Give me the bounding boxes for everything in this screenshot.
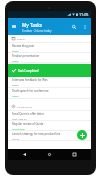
staticText: UPCOMING [17, 105, 32, 108]
button[interactable]: Send Quinn's offer letter [8, 111, 91, 121]
button[interactable]: Review blog post [8, 43, 91, 53]
button[interactable]: More options [80, 20, 89, 33]
button[interactable]: Search [69, 20, 79, 33]
staticText: My Tasks [22, 22, 43, 28]
staticText: Draft speech for conference [12, 89, 49, 93]
button[interactable]: Finalize presentation [8, 53, 91, 63]
staticText: Today [12, 59, 19, 62]
button[interactable]: UPCOMING [8, 99, 91, 111]
staticText: Wed, June 22 [12, 117, 27, 120]
button[interactable]: Task Completed [8, 64, 91, 77]
staticText: Task Completed [18, 69, 39, 73]
staticText: 11:05 [79, 12, 89, 17]
staticText: Today [12, 83, 19, 86]
staticText: Virtual Plan [12, 127, 25, 130]
staticText: Send Quinn's offer letter [12, 112, 45, 116]
button[interactable]: Navigation menu [9, 20, 19, 33]
staticText: Today [12, 94, 19, 97]
staticText: Review blog post [12, 44, 35, 48]
button[interactable]: Add task [77, 130, 87, 140]
button[interactable]: Launch strategy for new product line [8, 131, 91, 141]
staticText: Interview feedback for Wes [12, 78, 48, 82]
staticText: Finalize presentation [12, 54, 40, 58]
button[interactable]: Interview feedback for Wes [8, 77, 91, 88]
staticText: TODAY [17, 37, 26, 40]
staticText: Regular review of Guide [12, 122, 44, 126]
button[interactable]: Recent apps [70, 150, 79, 159]
button[interactable]: Home [45, 150, 54, 159]
button[interactable]: Back [20, 150, 29, 159]
button[interactable]: Draft speech for conference [8, 88, 91, 99]
button[interactable]: Regular review of Guide [8, 121, 91, 131]
staticText: 5 active · 2 done today [22, 29, 52, 33]
staticText: Launch strategy for new product line [12, 132, 61, 136]
staticText: Today [12, 49, 19, 52]
staticText: Jun 28 [12, 137, 19, 140]
button[interactable]: TODAY [8, 35, 91, 43]
